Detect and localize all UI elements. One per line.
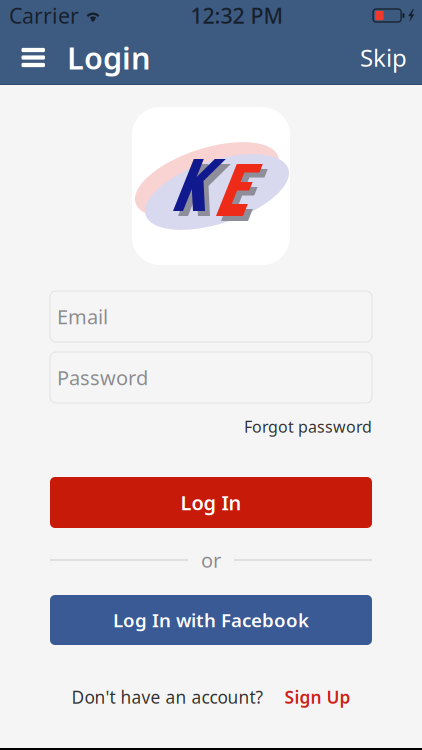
staticText: Password [57,364,148,391]
button[interactable]: Sign Up [284,685,350,708]
staticText: Forgot password [244,416,372,437]
staticText: 12:32 PM [191,1,284,30]
button[interactable]: Forgot password [244,415,372,438]
staticText: Don't have an account? [71,685,263,708]
staticText: Sign Up [284,685,350,708]
staticText: Skip [360,42,407,73]
staticText: Log In with Facebook [113,608,309,632]
staticText: Login [67,37,151,78]
staticText: Email [57,303,108,330]
staticText: or [201,547,221,573]
button[interactable]: Skip [344,31,407,84]
staticText: Log In [180,489,241,516]
button[interactable]: Log In [50,477,372,528]
button[interactable]: Menu [0,31,67,84]
button[interactable]: Log In with Facebook [50,595,372,645]
staticText: Carrier [9,1,79,30]
